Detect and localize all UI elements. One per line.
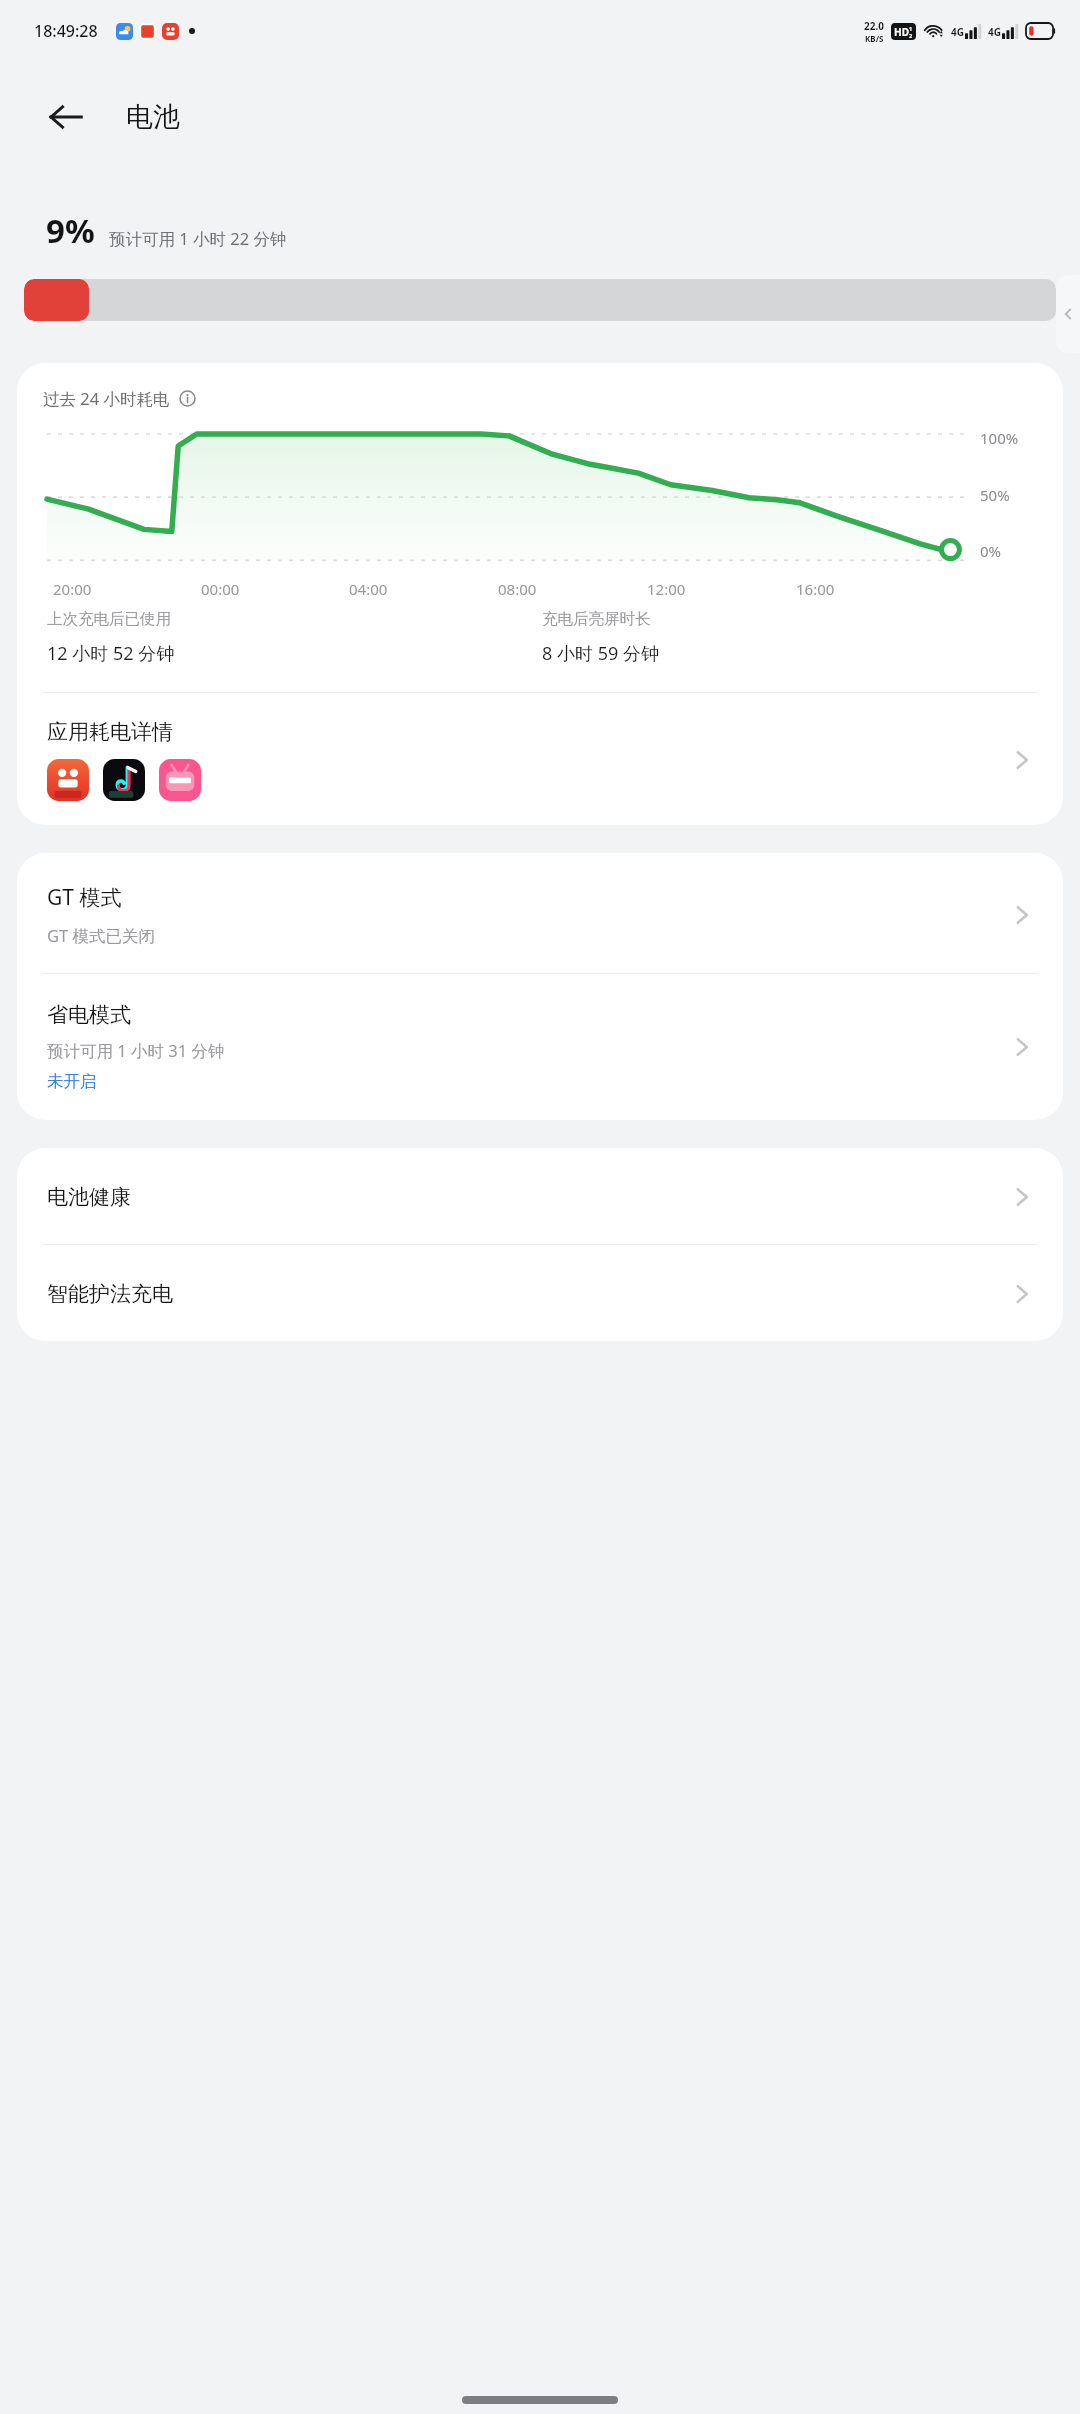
button[interactable]: 省电模式 xyxy=(17,974,1063,1120)
other: Open xyxy=(1007,900,1037,930)
staticText: 18:49:28 xyxy=(34,20,98,42)
staticText: 预计可用 1 小时 22 分钟 xyxy=(109,227,287,250)
button[interactable]: Open side panel xyxy=(1056,275,1080,353)
staticText: 50% xyxy=(980,485,1010,505)
other: Info xyxy=(179,390,196,407)
staticText: 上次充电后已使用 xyxy=(47,609,171,629)
staticText: 4G xyxy=(988,25,1001,39)
staticText: 4G xyxy=(951,25,964,39)
staticText: 0% xyxy=(980,541,1002,561)
staticText: 2 xyxy=(909,32,913,39)
staticText: GT 模式已关闭 xyxy=(47,924,155,947)
staticText: 12 小时 52 分钟 xyxy=(47,641,175,666)
staticText: 9% xyxy=(46,208,95,253)
staticText: 08:00 xyxy=(498,579,537,599)
button[interactable]: 应用耗电详情 xyxy=(17,693,1063,825)
button[interactable]: GT 模式 xyxy=(17,853,1063,973)
staticText: 04:00 xyxy=(349,579,388,599)
staticText: 电池健康 xyxy=(47,1184,1007,1210)
staticText: 预计可用 1 小时 31 分钟 xyxy=(47,1039,225,1062)
staticText: 智能护法充电 xyxy=(47,1281,1007,1307)
staticText: 未开启 xyxy=(47,1071,97,1092)
other: Open xyxy=(1007,1182,1037,1212)
staticText: 20:00 xyxy=(53,579,92,599)
other: Open xyxy=(1007,1032,1037,1062)
staticText: 22.0 xyxy=(864,19,884,33)
button[interactable]: 智能护法充电 xyxy=(17,1245,1063,1341)
staticText: 应用耗电详情 xyxy=(47,719,173,745)
staticText: KB/S xyxy=(865,33,884,44)
staticText: 00:00 xyxy=(201,579,240,599)
staticText: 过去 24 小时耗电 xyxy=(43,387,170,410)
button[interactable]: 过去 24 小时耗电 xyxy=(43,387,196,410)
button[interactable]: 电池健康 xyxy=(17,1148,1063,1244)
staticText: 省电模式 xyxy=(47,1002,131,1028)
staticText: 电池 xyxy=(126,100,180,134)
staticText: 100% xyxy=(980,428,1019,448)
other: Open xyxy=(1007,1279,1037,1309)
staticText: 12:00 xyxy=(647,579,686,599)
staticText: 1 xyxy=(909,25,913,32)
other: Open xyxy=(1007,745,1037,775)
staticText: GT 模式 xyxy=(47,883,122,912)
staticText: 充电后亮屏时长 xyxy=(542,609,651,629)
staticText: 8 小时 59 分钟 xyxy=(542,641,659,666)
staticText: HD xyxy=(894,25,909,39)
staticText: 16:00 xyxy=(796,579,835,599)
button[interactable]: Back xyxy=(30,81,102,153)
